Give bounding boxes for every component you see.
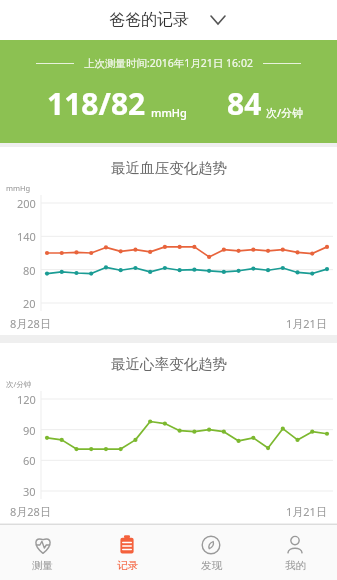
staticText: 上次测量时间:2016年1月21日 16:02 [84,56,253,70]
staticText: 1月21日 [286,504,327,519]
staticText: 测量 [32,559,53,572]
staticText: 次/分钟 [266,105,304,120]
staticText: mmHg [151,105,187,120]
staticText: 我的 [285,559,306,572]
button[interactable]: 最近心率变化趋势 [0,343,337,523]
button[interactable]: 我的 [253,525,337,580]
staticText: 爸爸的记录 [109,10,189,30]
button[interactable]: 发现 [169,525,253,580]
staticText: 120 [17,392,36,407]
button[interactable]: 记录 [85,525,169,580]
staticText: 90 [23,423,36,438]
staticText: 最近血压变化趋势 [111,159,227,177]
staticText: 20 [23,296,36,311]
staticText: 140 [17,229,36,244]
staticText: 8月28日 [10,316,51,331]
staticText: 60 [23,453,36,468]
staticText: 30 [23,484,36,499]
staticText: 8月28日 [10,504,51,519]
staticText: 200 [17,196,36,211]
button[interactable]: 最近血压变化趋势 [0,147,337,335]
staticText: 80 [23,263,36,278]
button[interactable]: 测量 [0,525,85,580]
staticText: 84 [227,83,262,124]
button[interactable]: Select profile [207,9,229,31]
staticText: mmHg [6,183,31,193]
staticText: 发现 [201,559,222,572]
staticText: 记录 [117,559,138,572]
staticText: 118/82 [47,83,146,124]
staticText: 1月21日 [286,316,327,331]
staticText: 次/分钟 [6,379,32,389]
staticText: 最近心率变化趋势 [111,355,227,373]
